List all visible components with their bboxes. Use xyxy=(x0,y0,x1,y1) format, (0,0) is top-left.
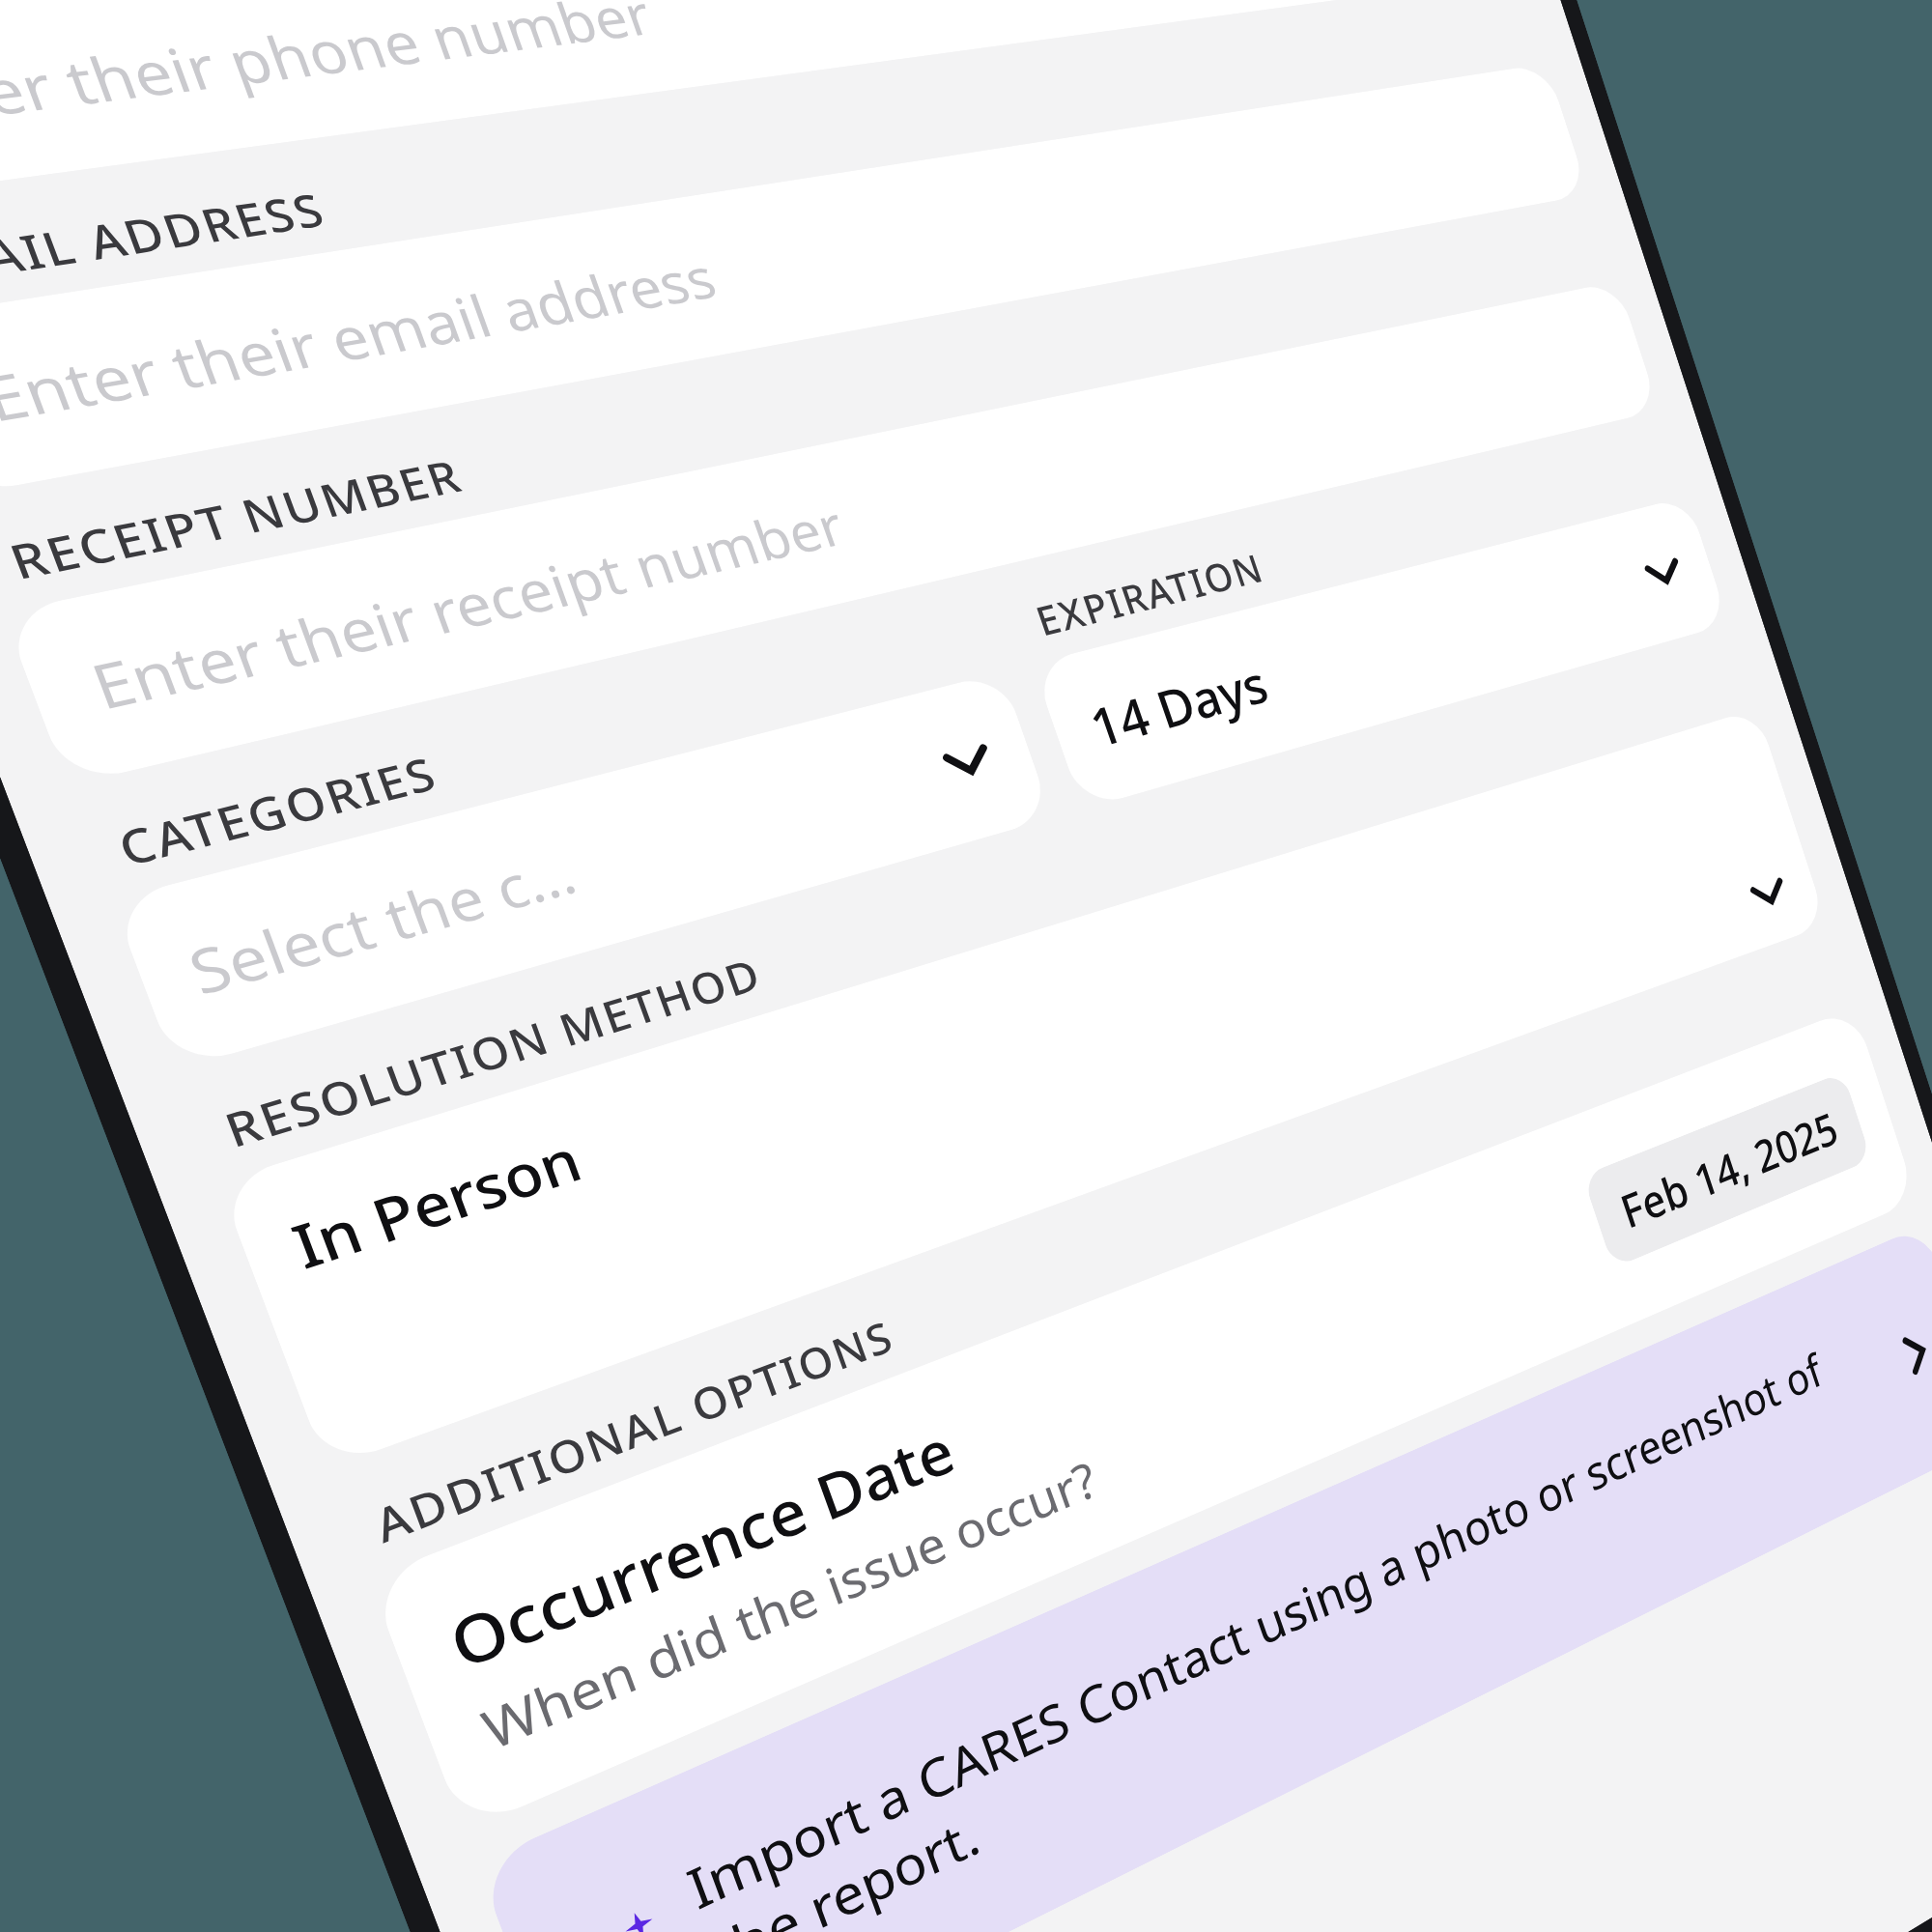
staticText: Feb 14, 2025 xyxy=(1613,1097,1844,1241)
button[interactable]: Feb 14, 2025 xyxy=(1582,1072,1872,1268)
staticText: EMAIL ADDRESS xyxy=(0,179,335,302)
button[interactable]: Occurrence Date xyxy=(369,1008,1917,1832)
staticText: When did the issue occur? xyxy=(472,1445,1105,1765)
staticText: In Person xyxy=(281,1119,592,1286)
staticText: Import a CARES Contact using a photo or … xyxy=(677,1313,1902,1932)
button[interactable]: Select the c… xyxy=(111,672,1053,1070)
button[interactable]: Enter their email address xyxy=(0,63,1589,496)
staticText: Enter their email address xyxy=(0,239,726,439)
staticText: RECEIPT NUMBER xyxy=(0,445,471,594)
button[interactable]: Enter their receipt number xyxy=(2,281,1660,785)
button[interactable]: In Person xyxy=(218,708,1827,1469)
staticText: CATEGORIES xyxy=(109,742,446,880)
staticText: Enter their receipt number xyxy=(79,487,854,727)
other: Open import xyxy=(1893,1325,1932,1381)
staticText: Enter their phone number xyxy=(0,0,662,147)
button[interactable]: 14 Days xyxy=(1032,496,1729,809)
staticText: RESOLUTION METHOD xyxy=(216,944,769,1162)
button[interactable]: Enter their phone number xyxy=(0,0,1518,202)
staticText: Occurrence Date xyxy=(437,1408,965,1689)
staticText: 14 Days xyxy=(1080,648,1277,762)
staticText: ADDITIONAL OPTIONS xyxy=(366,1306,902,1557)
staticText: Select the c… xyxy=(177,832,586,1012)
button[interactable]: Import a CARES Contact using a photo or … xyxy=(477,1224,1932,1932)
staticText: EXPIRATION xyxy=(1029,541,1271,648)
